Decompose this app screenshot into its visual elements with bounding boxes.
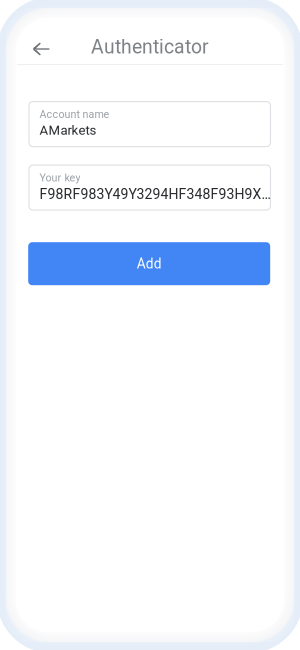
staticText: Add bbox=[137, 256, 162, 272]
staticText: F98RF983Y49Y3294HF348F93H9X… bbox=[39, 186, 270, 202]
staticText: AMarkets bbox=[39, 123, 96, 138]
staticText: Your key bbox=[39, 171, 80, 184]
staticText: Account name bbox=[39, 108, 109, 121]
button[interactable]: Add bbox=[28, 242, 270, 285]
staticText: Authenticator bbox=[91, 36, 209, 58]
button[interactable]: Back bbox=[24, 34, 58, 64]
